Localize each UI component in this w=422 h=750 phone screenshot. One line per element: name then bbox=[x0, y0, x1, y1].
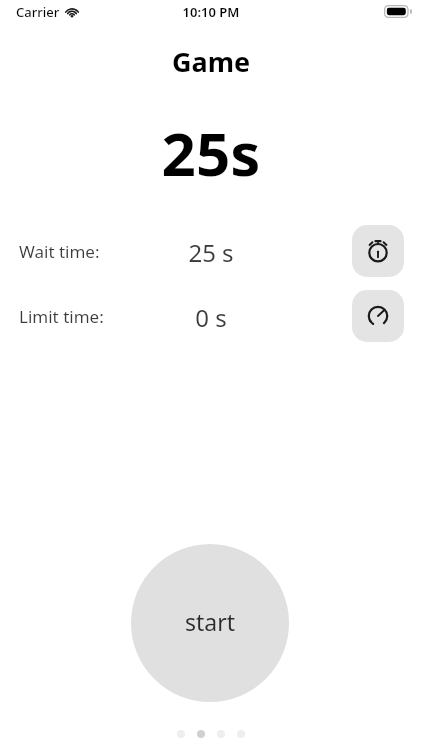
button[interactable]: start bbox=[131, 544, 289, 702]
staticText: Limit time: bbox=[19, 305, 104, 328]
staticText: Carrier bbox=[16, 3, 60, 21]
staticText: 10:10 PM bbox=[0, 3, 422, 21]
staticText: Wait time: bbox=[19, 240, 100, 263]
staticText: start bbox=[185, 606, 236, 637]
button[interactable]: Set limit time bbox=[352, 290, 404, 342]
staticText: 25s bbox=[0, 112, 422, 194]
staticText: Game bbox=[0, 43, 422, 80]
staticText: 0 s bbox=[0, 301, 422, 334]
button[interactable]: Set wait time bbox=[352, 225, 404, 277]
staticText: 25 s bbox=[0, 236, 422, 269]
